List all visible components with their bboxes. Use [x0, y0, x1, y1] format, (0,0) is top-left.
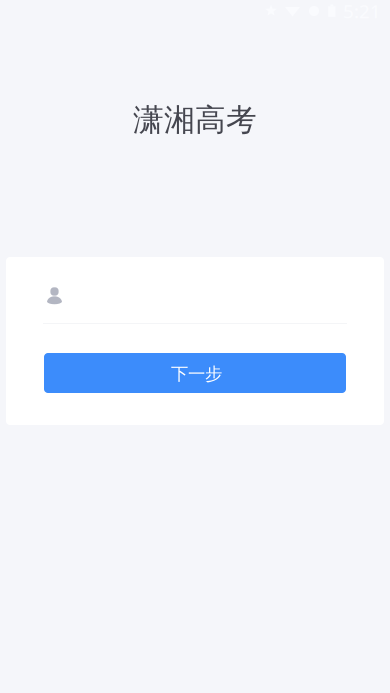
- staticText: 潇湘高考: [133, 101, 257, 139]
- staticText: 下一步: [171, 363, 222, 385]
- button[interactable]: 下一步: [44, 353, 346, 393]
- button[interactable]: 账号输入框: [43, 279, 347, 322]
